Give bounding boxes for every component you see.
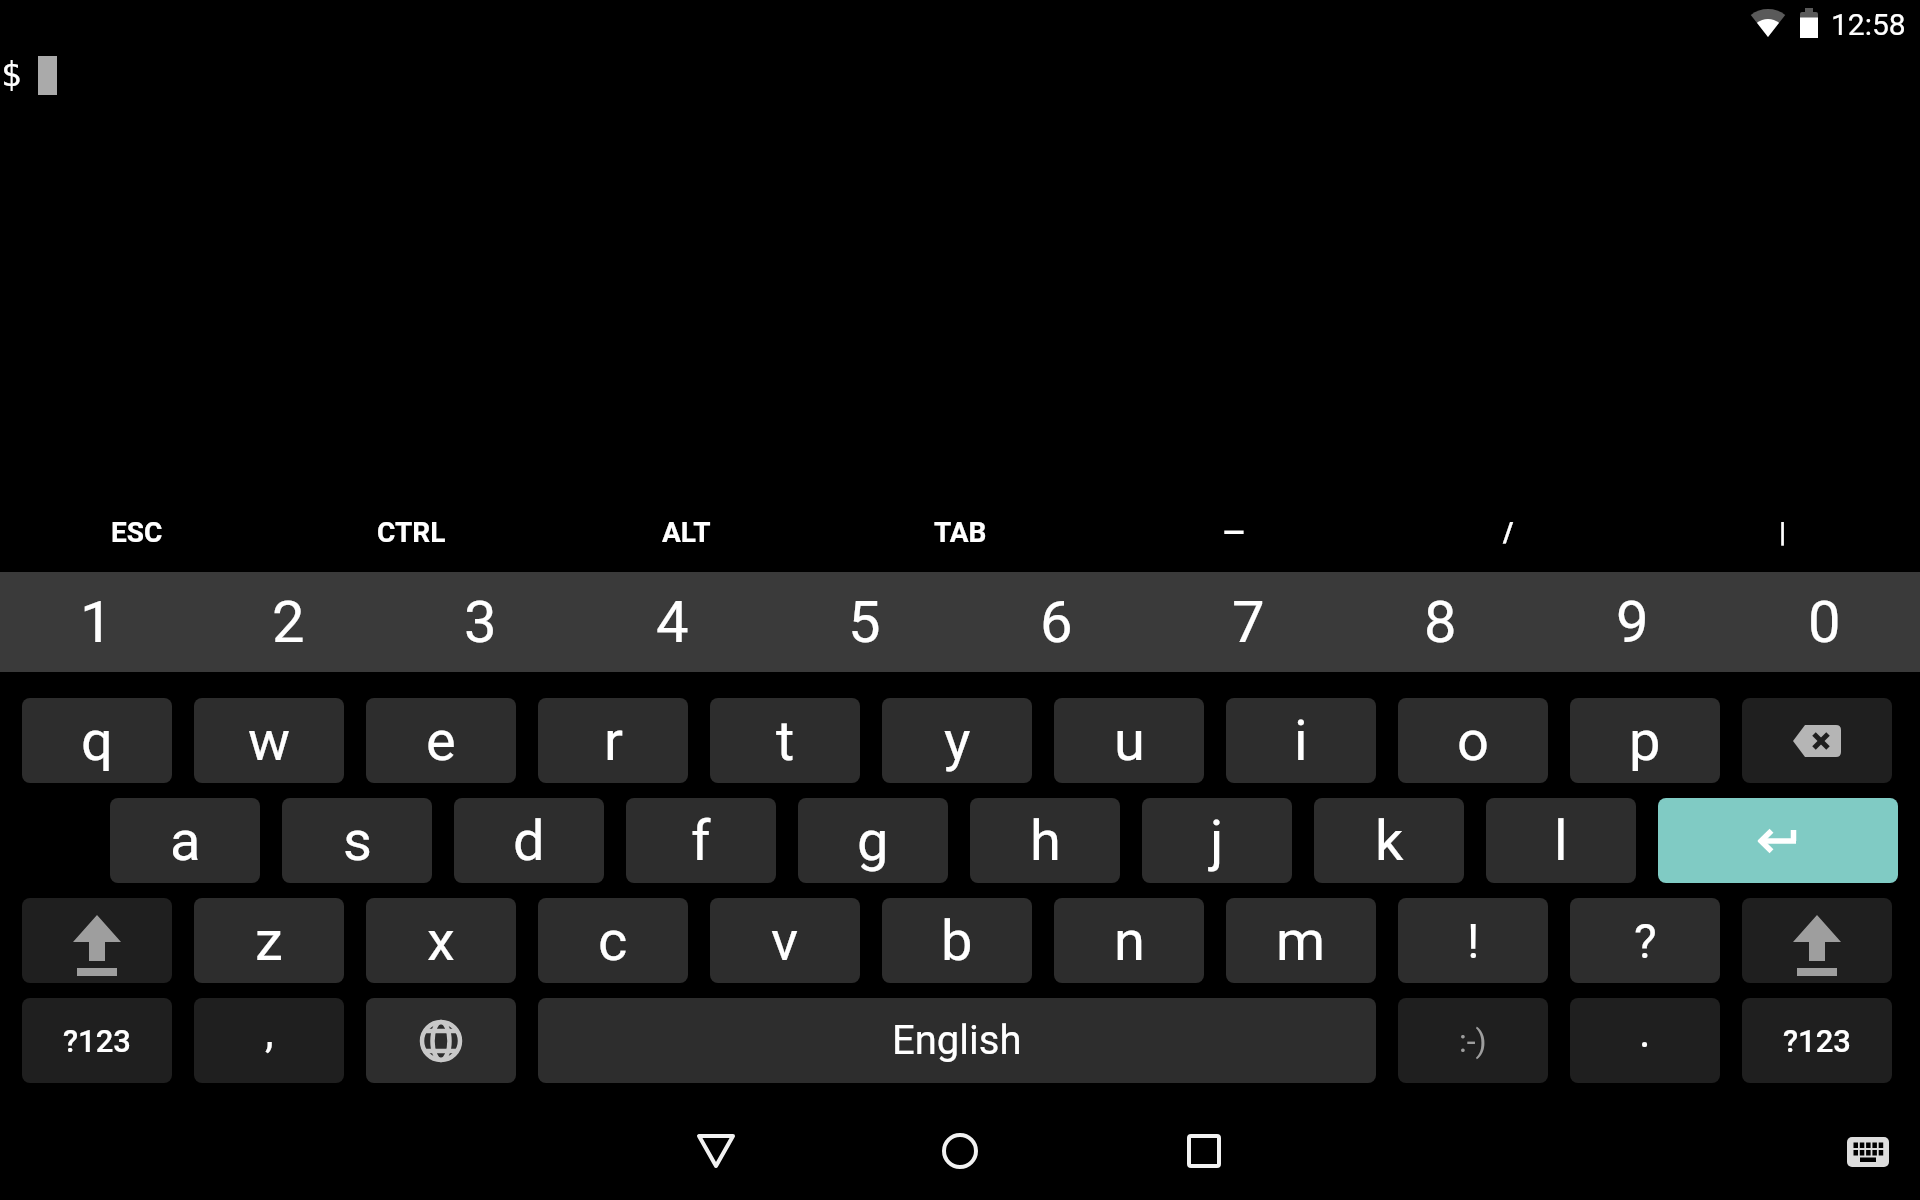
button[interactable] (1742, 898, 1892, 983)
button[interactable] (688, 1123, 744, 1179)
button[interactable]: h (970, 798, 1120, 883)
button[interactable]: k (1314, 798, 1464, 883)
button[interactable]: English (538, 998, 1376, 1083)
staticText: 9 (1616, 588, 1649, 656)
button[interactable]: u (1054, 698, 1204, 783)
button[interactable]: ?123 (22, 998, 172, 1083)
button[interactable]: CTRL (274, 492, 548, 572)
button[interactable]: t (710, 698, 860, 783)
staticText: o (1457, 708, 1489, 774)
staticText: — (1223, 516, 1245, 549)
staticText: h (1030, 808, 1061, 874)
staticText: , (265, 1006, 274, 1058)
button[interactable] (1742, 698, 1892, 783)
staticText: . (1639, 1006, 1651, 1058)
button[interactable]: 9 (1536, 572, 1728, 672)
button[interactable]: 0 (1728, 572, 1920, 672)
button[interactable]: ! (1398, 898, 1548, 983)
staticText: ALT (662, 516, 711, 549)
button[interactable]: , (194, 998, 344, 1083)
button[interactable]: j (1142, 798, 1292, 883)
staticText: 1 (80, 588, 113, 656)
button[interactable]: q (22, 698, 172, 783)
staticText: 12:58 (1831, 7, 1906, 41)
button[interactable]: 5 (768, 572, 960, 672)
button[interactable]: 7 (1152, 572, 1344, 672)
button[interactable]: 6 (960, 572, 1152, 672)
staticText: :-) (1459, 1022, 1487, 1060)
staticText: English (892, 1017, 1022, 1064)
staticText: ?123 (63, 1023, 131, 1059)
button[interactable]: d (454, 798, 604, 883)
button[interactable]: ESC (0, 492, 274, 572)
button[interactable]: v (710, 898, 860, 983)
staticText: r (604, 708, 623, 774)
button[interactable]: ALT (549, 492, 823, 572)
button[interactable]: o (1398, 698, 1548, 783)
button[interactable] (1658, 798, 1898, 883)
button[interactable]: w (194, 698, 344, 783)
staticText: m (1276, 908, 1326, 974)
button[interactable]: y (882, 698, 1032, 783)
button[interactable]: 8 (1344, 572, 1536, 672)
staticText: ! (1467, 913, 1480, 969)
button[interactable] (1176, 1123, 1232, 1179)
staticText: / (1503, 516, 1514, 549)
button[interactable]: e (366, 698, 516, 783)
button[interactable]: p (1570, 698, 1720, 783)
button[interactable]: 2 (192, 572, 384, 672)
button[interactable] (22, 898, 172, 983)
button[interactable]: f (626, 798, 776, 883)
button[interactable]: m (1226, 898, 1376, 983)
button[interactable]: TAB (823, 492, 1097, 572)
button[interactable]: z (194, 898, 344, 983)
button[interactable]: 1 (0, 572, 192, 672)
button[interactable]: — (1097, 492, 1371, 572)
button[interactable]: i (1226, 698, 1376, 783)
button[interactable] (932, 1123, 988, 1179)
staticText: e (426, 708, 456, 774)
staticText: x (427, 908, 455, 974)
button[interactable]: n (1054, 898, 1204, 983)
staticText: q (81, 708, 113, 774)
button[interactable]: a (110, 798, 260, 883)
button[interactable] (1840, 1130, 1896, 1174)
button[interactable]: b (882, 898, 1032, 983)
button[interactable]: / (1371, 492, 1645, 572)
button[interactable] (366, 998, 516, 1083)
button[interactable]: | (1646, 492, 1920, 572)
staticText: 4 (656, 588, 689, 656)
staticText: ESC (111, 516, 163, 549)
staticText: t (776, 708, 795, 774)
staticText: l (1554, 808, 1568, 874)
button[interactable]: 3 (384, 572, 576, 672)
button[interactable]: r (538, 698, 688, 783)
staticText: w (248, 708, 291, 774)
button[interactable]: 4 (576, 572, 768, 672)
button[interactable]: :-) (1398, 998, 1548, 1083)
staticText: f (691, 808, 711, 874)
staticText: 6 (1040, 588, 1073, 656)
staticText: 0 (1808, 588, 1841, 656)
staticText: g (857, 808, 889, 874)
staticText: d (513, 808, 545, 874)
button[interactable]: c (538, 898, 688, 983)
staticText: j (1210, 808, 1224, 874)
button[interactable]: x (366, 898, 516, 983)
staticText: ? (1634, 913, 1657, 969)
staticText: n (1114, 908, 1145, 974)
staticText: ?123 (1783, 1023, 1851, 1059)
button[interactable]: l (1486, 798, 1636, 883)
button[interactable]: ?123 (1742, 998, 1892, 1083)
button[interactable]: s (282, 798, 432, 883)
staticText: 8 (1424, 588, 1457, 656)
staticText: c (598, 908, 628, 974)
button[interactable]: ? (1570, 898, 1720, 983)
staticText: TAB (934, 516, 987, 549)
staticText: z (255, 908, 283, 974)
button[interactable]: . (1570, 998, 1720, 1083)
staticText: CTRL (377, 516, 446, 549)
staticText: s (343, 808, 372, 874)
button[interactable]: g (798, 798, 948, 883)
staticText: 5 (848, 588, 881, 656)
